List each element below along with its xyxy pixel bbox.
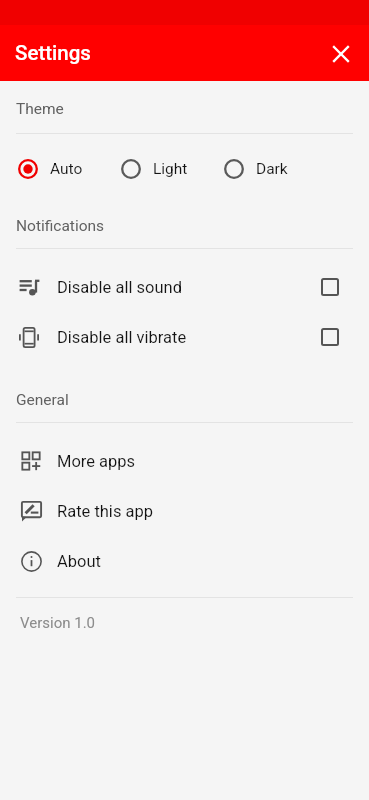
staticText: General <box>16 391 69 409</box>
staticText: About <box>57 552 101 571</box>
staticText: Settings <box>15 41 91 65</box>
button[interactable]: Disable all sound <box>0 262 369 312</box>
staticText: Dark <box>256 160 288 178</box>
button[interactable]: Auto <box>18 147 121 191</box>
staticText: Light <box>153 160 188 178</box>
staticText: More apps <box>57 452 136 471</box>
staticText: Notifications <box>16 217 105 235</box>
staticText: Disable all vibrate <box>57 328 187 347</box>
staticText: Theme <box>16 100 64 118</box>
staticText: Auto <box>50 160 83 178</box>
staticText: Rate this app <box>57 502 153 521</box>
staticText: Disable all sound <box>57 278 182 297</box>
button[interactable]: About <box>0 536 369 586</box>
button[interactable]: Rate this app <box>0 486 369 536</box>
button[interactable]: Light <box>121 147 224 191</box>
staticText: Version 1.0 <box>20 614 96 632</box>
button[interactable]: Disable all vibrate <box>0 312 369 362</box>
button[interactable]: More apps <box>0 436 369 486</box>
button[interactable]: Dark <box>224 147 327 191</box>
button[interactable]: Close <box>324 36 358 70</box>
